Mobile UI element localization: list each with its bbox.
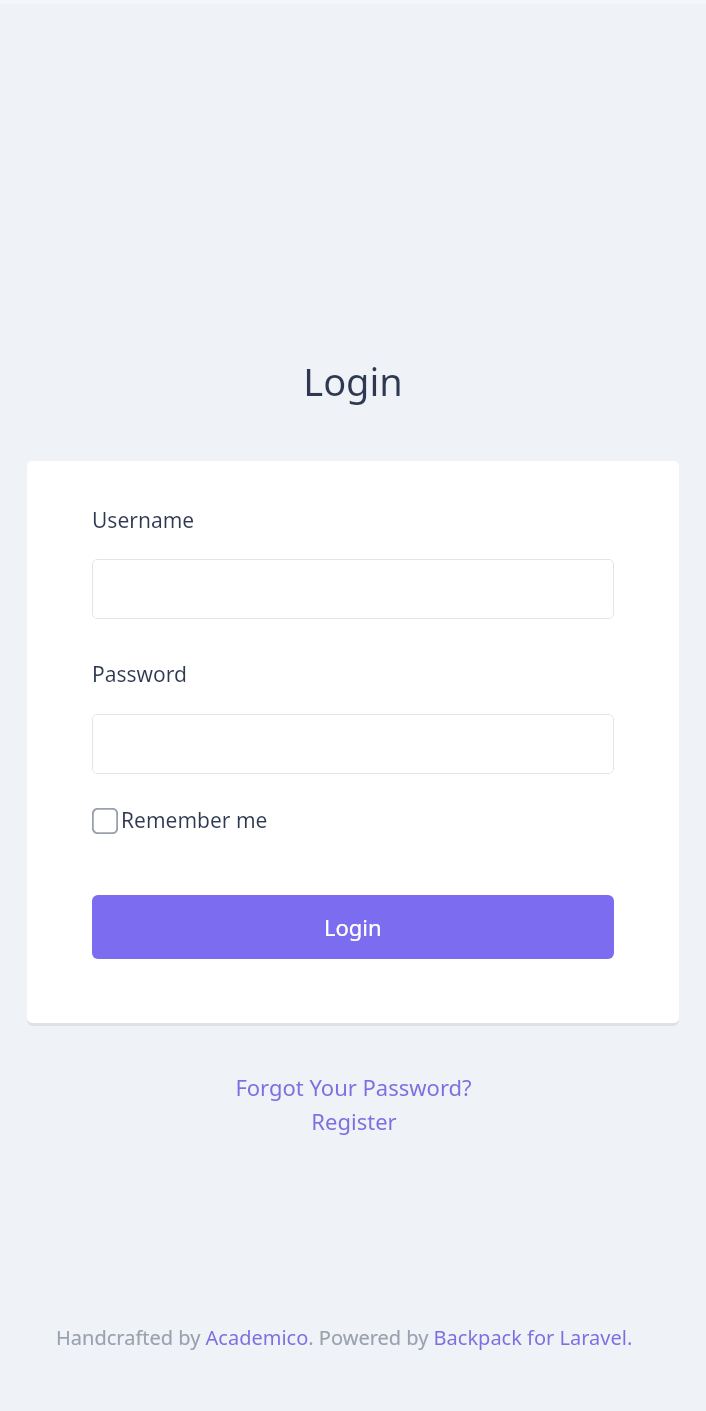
button[interactable]: Login	[92, 895, 614, 959]
button[interactable]: Remember me	[92, 806, 272, 835]
button[interactable]: Password input field	[92, 714, 614, 774]
staticText: Login	[324, 912, 382, 942]
staticText: Handcrafted by Academico. Powered by Bac…	[56, 1324, 633, 1351]
button[interactable]: Register	[305, 1104, 403, 1138]
staticText: Username	[92, 506, 195, 535]
staticText: Forgot Your Password?	[235, 1072, 472, 1102]
button[interactable]: Forgot Your Password?	[229, 1070, 478, 1104]
staticText: Password	[92, 660, 187, 689]
button[interactable]: Username input field	[92, 559, 614, 619]
staticText: Register	[311, 1106, 397, 1136]
staticText: Login	[0, 355, 706, 407]
staticText: Remember me	[121, 806, 268, 835]
